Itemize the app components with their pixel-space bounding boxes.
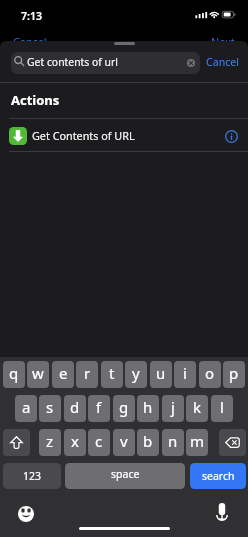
button[interactable]: space [65,463,185,489]
button[interactable]: p [223,361,245,388]
staticText: 123 [23,469,42,483]
button[interactable]: o [199,361,221,388]
button[interactable]: q [3,361,25,388]
button[interactable]: Dictation [212,502,231,521]
staticText: r [84,363,91,383]
button[interactable]: h [137,395,159,422]
button[interactable]: w [27,361,49,388]
button[interactable]: x [64,429,86,456]
button[interactable]: d [64,395,86,422]
button[interactable]: search [190,463,246,489]
button[interactable]: n [162,429,184,456]
staticText: g [119,397,129,417]
button[interactable]: 123 [3,463,61,489]
staticText: Get Contents of URL [32,128,223,143]
staticText: c [95,431,103,451]
staticText: v [120,431,128,451]
staticText: p [229,363,239,383]
button[interactable]: c [88,429,110,456]
button[interactable]: Info [223,128,239,144]
button[interactable]: t [101,361,123,388]
staticText: i [183,363,187,383]
button[interactable]: j [162,395,184,422]
button[interactable]: v [113,429,135,456]
staticText: Next [211,34,235,49]
button[interactable]: u [150,361,172,388]
button[interactable]: f [88,395,110,422]
staticText: s [46,397,54,417]
staticText: k [193,397,202,417]
staticText: x [71,431,79,451]
button[interactable]: g [113,395,135,422]
staticText: 7:13 [21,9,43,23]
staticText: e [59,363,68,383]
staticText: n [168,431,178,451]
staticText: a [22,397,31,417]
staticText: search [202,469,235,483]
button[interactable]: z [39,429,61,456]
button[interactable]: r [76,361,98,388]
button[interactable]: Delete [219,429,246,456]
staticText: l [220,397,224,417]
button[interactable]: y [125,361,147,388]
staticText: f [96,397,102,417]
button[interactable]: Shift [3,429,30,456]
staticText: d [70,397,80,417]
staticText: w [32,363,44,383]
staticText: t [109,363,115,383]
button[interactable]: l [211,395,233,422]
button[interactable]: s [39,395,61,422]
staticText: Actions [11,91,60,109]
staticText: j [171,397,175,417]
button[interactable]: i [174,361,196,388]
button[interactable]: k [186,395,208,422]
staticText: m [190,431,205,451]
button[interactable]: Get contents of url [11,52,200,74]
staticText: q [9,363,19,383]
button[interactable]: a [15,395,37,422]
staticText: z [46,431,54,451]
staticText: Cancel [206,55,239,69]
staticText: Cancel [13,34,47,49]
button[interactable]: Clear text [184,56,198,70]
staticText: Get contents of url [27,55,184,69]
staticText: u [156,363,166,383]
staticText: space [111,467,140,481]
staticText: y [132,363,140,383]
button[interactable]: Get Contents of URL [0,119,248,152]
staticText: o [205,363,215,383]
button[interactable]: e [52,361,74,388]
staticText: b [143,431,153,451]
button[interactable]: m [186,429,208,456]
button[interactable]: Emoji keyboard [16,504,35,523]
button[interactable]: b [137,429,159,456]
button[interactable]: Cancel [200,52,239,74]
staticText: h [143,397,153,417]
